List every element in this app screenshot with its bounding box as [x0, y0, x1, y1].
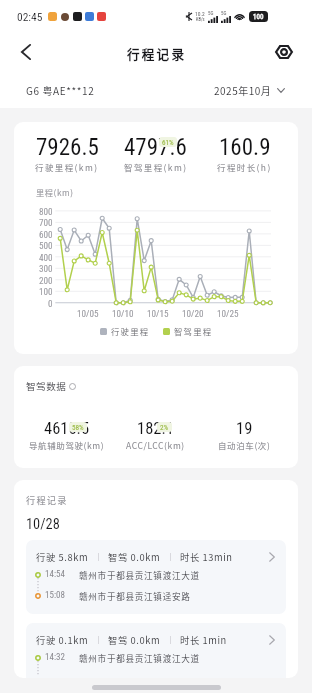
staticText: 10/05: [77, 308, 99, 319]
staticText: 600: [39, 229, 53, 240]
staticText: 10/20: [182, 308, 204, 319]
staticText: 10/10: [112, 308, 134, 319]
staticText: G6 粤AE***12: [26, 83, 95, 97]
button[interactable]: Back: [10, 36, 42, 68]
staticText: 智驾数据: [26, 379, 67, 393]
staticText: 行程记录: [26, 493, 68, 506]
staticText: 智驾里程: [174, 325, 213, 337]
button[interactable]: 行驶 0.1km: [26, 623, 286, 678]
button[interactable]: Settings: [270, 38, 298, 66]
staticText: 2%: [160, 423, 169, 431]
staticText: KB/s: [196, 17, 205, 22]
staticText: 10/28: [26, 516, 60, 533]
staticText: 15:08: [45, 590, 65, 601]
button[interactable]: 行驶 5.8km: [26, 540, 286, 614]
staticText: 行驶里程(km): [35, 161, 99, 173]
staticText: 2025年10月: [214, 83, 272, 97]
staticText: 19: [236, 419, 253, 438]
staticText: 182.1: [137, 419, 174, 438]
staticText: 里程(km): [36, 186, 74, 198]
staticText: 智驾里程(km): [124, 161, 188, 173]
staticText: 500: [39, 240, 53, 251]
staticText: 14:32: [45, 652, 65, 663]
staticText: 行驶里程: [111, 325, 150, 337]
staticText: 自动泊车(次): [218, 439, 271, 451]
staticText: 02:45: [17, 10, 43, 23]
staticText: 700: [39, 217, 53, 228]
staticText: 5G: [221, 10, 227, 16]
staticText: 100: [253, 13, 264, 21]
staticText: 61%: [162, 138, 174, 146]
staticText: 100: [39, 286, 53, 297]
staticText: 200: [39, 275, 53, 286]
staticText: ACC/LCC(km): [126, 439, 185, 451]
staticText: 5G: [208, 10, 214, 16]
staticText: 10/15: [147, 308, 169, 319]
staticText: 58%: [72, 423, 84, 431]
staticText: 4797.6: [124, 134, 187, 161]
staticText: 10.2: [195, 11, 205, 17]
staticText: 赣州市于都县贡江镇渡江大道: [79, 652, 200, 663]
staticText: 160.9: [219, 134, 271, 161]
staticText: 800: [39, 206, 53, 217]
staticText: 赣州市于都县贡江镇迳安路: [79, 590, 191, 601]
staticText: 行程时长(h): [217, 161, 272, 173]
staticText: 时长 13min: [180, 550, 233, 563]
staticText: 时长 1min: [180, 633, 227, 646]
staticText: 智驾 0.0km: [108, 633, 161, 646]
staticText: 行驶 0.1km: [36, 633, 89, 646]
staticText: 10/25: [217, 308, 239, 319]
staticText: 赣州市于都县贡江镇渡江大道: [79, 569, 200, 580]
staticText: 0: [48, 298, 53, 309]
staticText: 智驾 0.0km: [108, 550, 161, 563]
staticText: 7926.5: [36, 134, 99, 161]
button[interactable]: 2025年10月: [209, 79, 293, 101]
staticText: 400: [39, 252, 53, 263]
staticText: 导航辅助驾驶(km): [29, 439, 105, 451]
staticText: 行程记录: [127, 44, 187, 62]
staticText: 14:54: [45, 569, 65, 580]
staticText: 4615.5: [44, 419, 90, 438]
staticText: 行驶 5.8km: [36, 550, 89, 563]
staticText: 300: [39, 263, 53, 274]
